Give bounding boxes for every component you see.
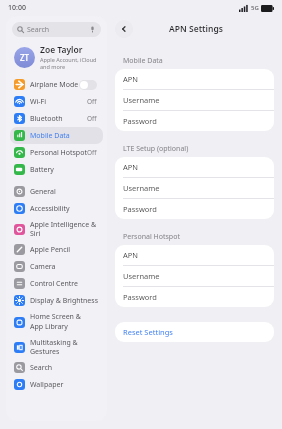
- staticText: Wi-Fi: [30, 97, 47, 107]
- button[interactable]: Accessibility: [10, 200, 103, 217]
- button[interactable]: Username: [115, 90, 274, 110]
- button[interactable]: Camera: [10, 258, 103, 275]
- staticText: Username: [123, 271, 160, 281]
- button[interactable]: Search: [12, 22, 101, 37]
- staticText: Home Screen &: [30, 312, 81, 322]
- button[interactable]: General: [10, 183, 103, 200]
- staticText: App Library: [30, 322, 68, 332]
- staticText: Camera: [30, 262, 56, 272]
- staticText: Search: [30, 363, 53, 373]
- staticText: APN: [123, 162, 139, 172]
- staticText: Personal Hotspot: [123, 232, 180, 242]
- staticText: APN: [123, 250, 139, 260]
- button[interactable]: Search: [10, 359, 103, 376]
- staticText: Off: [87, 97, 97, 106]
- button[interactable]: APN: [115, 69, 274, 89]
- button[interactable]: Username: [115, 178, 274, 198]
- staticText: Apple Account, iCloud: [40, 56, 97, 63]
- staticText: Password: [123, 116, 157, 126]
- staticText: APN Settings: [169, 23, 223, 35]
- staticText: and more: [40, 63, 66, 70]
- button[interactable]: Battery: [10, 161, 103, 178]
- staticText: Accessibility: [30, 204, 70, 214]
- staticText: Password: [123, 204, 157, 214]
- button[interactable]: Reset Settings: [115, 322, 274, 342]
- staticText: 10:00: [8, 3, 26, 13]
- button[interactable]: Apple Intelligence & Siri: [10, 217, 103, 241]
- button[interactable]: Home Screen &: [10, 309, 103, 335]
- staticText: Bluetooth: [30, 114, 63, 124]
- staticText: 5G: [251, 4, 259, 12]
- staticText: Battery: [30, 165, 54, 175]
- button[interactable]: Bluetooth: [10, 110, 103, 127]
- staticText: General: [30, 187, 56, 197]
- button[interactable]: Apple Pencil: [10, 241, 103, 258]
- staticText: Search: [27, 25, 50, 35]
- staticText: Personal Hotspot: [30, 148, 87, 158]
- button[interactable]: Back: [115, 20, 133, 38]
- staticText: Multitasking & Gestures: [30, 338, 99, 356]
- button[interactable]: Wallpaper: [10, 376, 103, 393]
- button[interactable]: APN: [115, 157, 274, 177]
- staticText: Apple Intelligence & Siri: [30, 220, 99, 238]
- staticText: Control Centre: [30, 279, 79, 289]
- button[interactable]: Username: [115, 266, 274, 286]
- staticText: Airplane Mode: [30, 80, 79, 90]
- staticText: Mobile Data: [30, 131, 70, 141]
- staticText: Wallpaper: [30, 380, 64, 390]
- staticText: Mobile Data: [123, 56, 163, 66]
- staticText: APN: [123, 74, 139, 84]
- button[interactable]: Password: [115, 287, 274, 307]
- staticText: Password: [123, 292, 157, 302]
- button[interactable]: Wi-Fi: [10, 93, 103, 110]
- staticText: ZT: [20, 52, 30, 63]
- button[interactable]: Control Centre: [10, 275, 103, 292]
- button[interactable]: Password: [115, 111, 274, 131]
- button[interactable]: Personal Hotspot: [10, 144, 103, 161]
- button[interactable]: Password: [115, 199, 274, 219]
- staticText: Display & Brightness: [30, 296, 99, 306]
- button[interactable]: Airplane Mode: [10, 76, 103, 93]
- staticText: Off: [87, 148, 97, 157]
- button[interactable]: Multitasking & Gestures: [10, 335, 103, 359]
- button[interactable]: ZT: [14, 44, 99, 70]
- button[interactable]: APN: [115, 245, 274, 265]
- staticText: Zoe Taylor: [40, 44, 83, 56]
- staticText: Apple Pencil: [30, 245, 71, 255]
- staticText: Username: [123, 183, 160, 193]
- button[interactable]: Mobile Data: [10, 127, 103, 144]
- staticText: Reset Settings: [123, 327, 173, 337]
- button[interactable]: Display & Brightness: [10, 292, 103, 309]
- staticText: Username: [123, 95, 160, 105]
- staticText: LTE Setup (optional): [123, 144, 189, 154]
- staticText: Off: [87, 114, 97, 123]
